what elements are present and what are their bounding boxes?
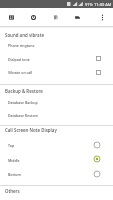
button[interactable]: Database Backup [0, 95, 113, 109]
staticText: Top [8, 143, 15, 148]
staticText: Dialpad tone [8, 57, 30, 62]
button[interactable]: Contacts [0, 8, 22, 26]
staticText: 11:00 AM [94, 2, 112, 7]
staticText: Bottom [8, 172, 21, 177]
staticText: Phone ringtone [8, 43, 35, 48]
button[interactable]: Dialpad tone [0, 52, 113, 66]
staticText: Vibrate on call [8, 70, 33, 75]
staticText: Others [5, 188, 20, 194]
button[interactable]: Vibrate on call [0, 65, 113, 79]
button[interactable]: Groups [44, 8, 66, 26]
staticText: Sound and vibrate [5, 32, 45, 38]
button[interactable]: Phone ringtone [0, 38, 113, 52]
button[interactable]: Recents [22, 8, 44, 26]
staticText: Database Backup [8, 100, 38, 105]
button[interactable]: Middle [0, 153, 113, 167]
staticText: Call Screen Note Display [5, 127, 57, 133]
button[interactable]: More options [92, 8, 113, 26]
staticText: Backup & Restore [5, 88, 43, 94]
button[interactable]: Messages [66, 8, 88, 26]
staticText: Database Restore [8, 113, 39, 118]
staticText: 91% [85, 2, 93, 7]
button[interactable]: Bottom [0, 167, 113, 181]
button[interactable]: Database Restore [0, 108, 113, 122]
staticText: Middle [8, 158, 20, 163]
button[interactable]: Top [0, 138, 113, 152]
